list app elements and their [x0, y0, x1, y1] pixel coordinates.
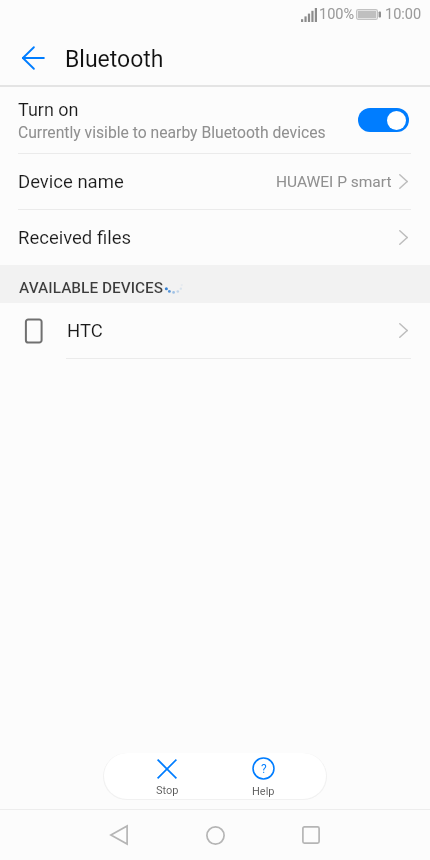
button[interactable]: Home [180, 810, 250, 860]
staticText: Help [252, 785, 275, 798]
button[interactable]: HTC [0, 303, 430, 358]
button[interactable]: Device name [0, 154, 430, 209]
staticText: 10:00 [385, 6, 422, 23]
staticText: Turn on [18, 99, 79, 120]
button[interactable]: Back [84, 810, 154, 860]
button[interactable]: Bluetooth on/off [358, 108, 409, 132]
staticText: Device name [18, 171, 124, 193]
button[interactable]: Received files [0, 210, 430, 265]
staticText: 100% [319, 6, 355, 23]
staticText: Bluetooth [65, 46, 164, 73]
staticText: Currently visible to nearby Bluetooth de… [18, 123, 326, 141]
button[interactable]: Back [9, 33, 57, 82]
button[interactable]: Turn on [0, 87, 430, 153]
button[interactable]: ? [215, 754, 311, 798]
staticText: AVAILABLE DEVICES [19, 279, 164, 297]
button[interactable]: Stop [119, 756, 215, 797]
staticText: ? [261, 762, 267, 776]
button[interactable]: Recent apps [276, 810, 346, 860]
staticText: HTC [67, 320, 103, 342]
staticText: Stop [156, 784, 179, 797]
staticText: HUAWEI P smart [276, 173, 392, 191]
staticText: Received files [18, 227, 131, 249]
